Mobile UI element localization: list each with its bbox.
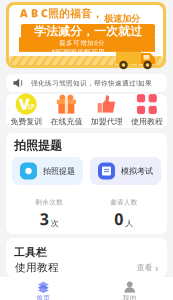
staticText: › xyxy=(155,260,158,275)
staticText: 拍照提题 xyxy=(14,138,62,153)
staticText: IP xyxy=(28,102,35,111)
staticText: 0 xyxy=(114,208,123,230)
staticText: 3 xyxy=(40,208,49,230)
staticText: 邀请人数 xyxy=(110,198,138,206)
staticText: 使用教程 xyxy=(131,117,163,126)
button[interactable]: 拍照提题 xyxy=(12,157,83,185)
staticText: 剩余次数 xyxy=(35,198,63,206)
staticText: 人 xyxy=(125,218,133,228)
staticText: V xyxy=(19,93,30,114)
staticText: 学法减分，一次就过 xyxy=(34,24,142,38)
button[interactable]: 模拟考试 xyxy=(90,157,161,185)
staticText: 模拟考试 xyxy=(121,166,153,176)
staticText: 我的 xyxy=(123,294,137,300)
staticText: A B C照的福音， xyxy=(20,6,103,18)
button[interactable]: 使用教程 xyxy=(6,260,167,275)
staticText: 首页 xyxy=(36,294,50,300)
staticText: 查看 xyxy=(136,263,152,272)
button[interactable]: V xyxy=(6,94,46,126)
button[interactable]: 加盟代理 xyxy=(86,94,127,126)
staticText: 强化练习驾照知识，帮你快速通过!如果 xyxy=(31,79,152,87)
button[interactable]: 使用教程 xyxy=(127,94,167,126)
staticText: 免费复训 xyxy=(10,117,42,126)
staticText: 工具栏 xyxy=(14,246,47,257)
staticText: 在线充值 xyxy=(50,117,82,126)
button[interactable]: 首页 xyxy=(0,281,86,300)
button[interactable]: 在线充值 xyxy=(46,94,86,126)
staticText: 极速加分 xyxy=(104,13,140,23)
staticText: 使用教程 xyxy=(15,261,59,274)
button[interactable]: 我的 xyxy=(86,281,173,300)
staticText: 拍照提题 xyxy=(43,166,75,176)
staticText: 次 xyxy=(51,218,59,228)
staticText: ABC驾照提醒可用 xyxy=(51,47,105,56)
staticText: 加盟代理 xyxy=(91,117,123,126)
staticText: 最多可增加6分 xyxy=(59,38,105,47)
